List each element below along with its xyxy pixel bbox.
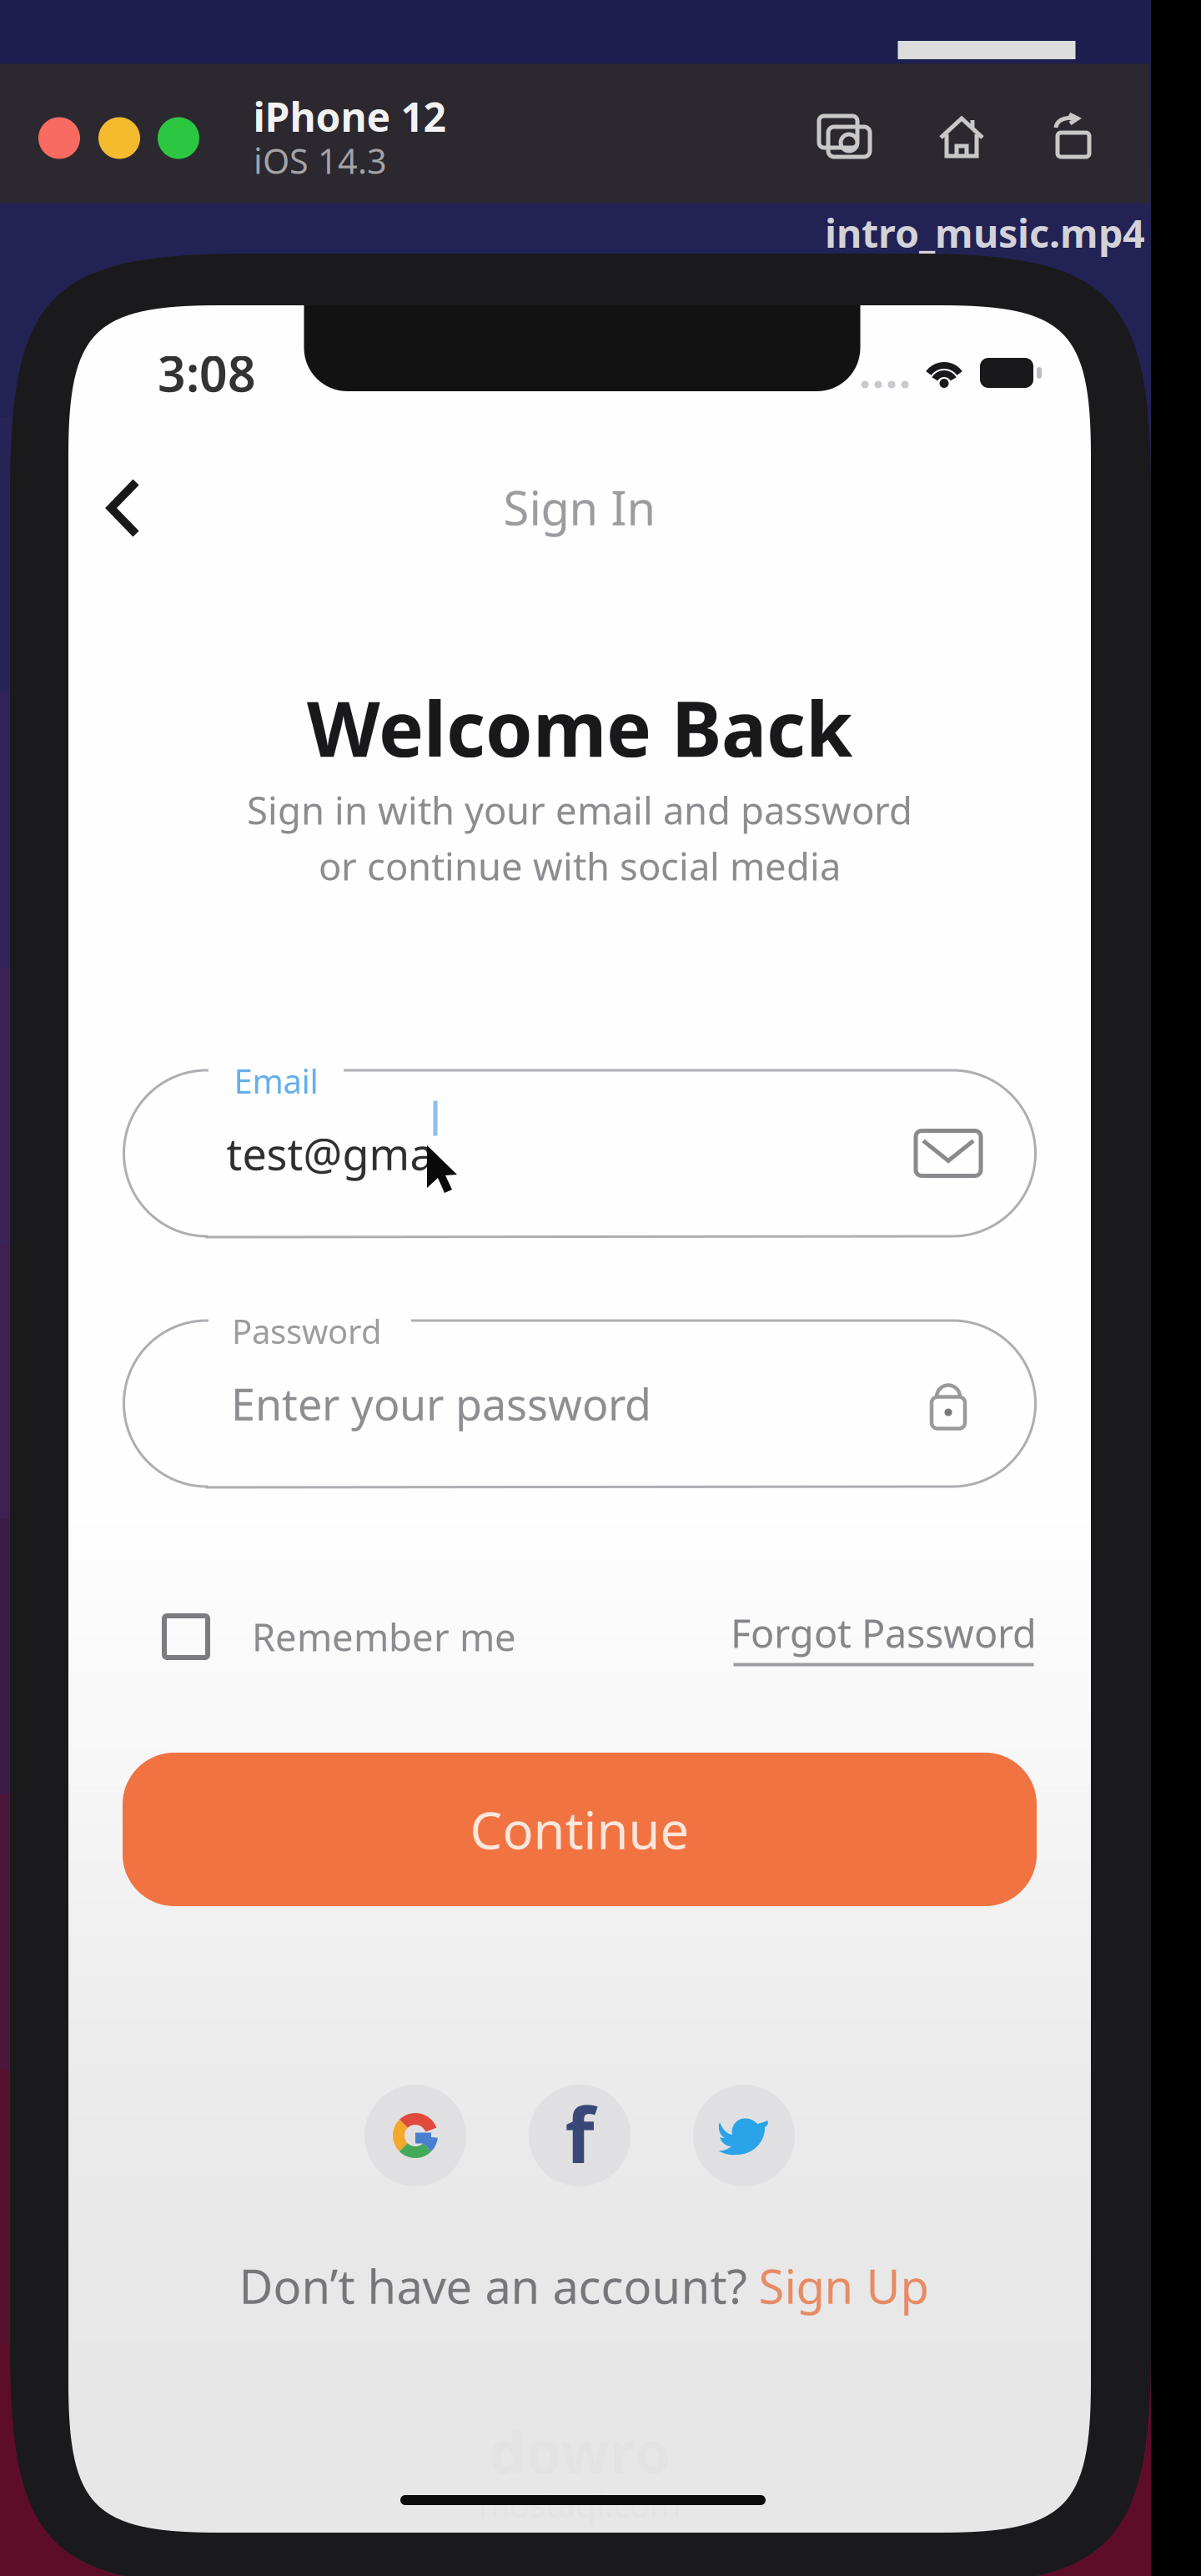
button[interactable]: Continue	[123, 1753, 1037, 1906]
staticText: intro_music.mp4	[825, 207, 1145, 259]
staticText: Continue	[470, 1795, 689, 1863]
staticText: Password	[232, 1309, 382, 1353]
button[interactable]: Back	[78, 463, 168, 553]
staticText: iPhone 12	[253, 90, 446, 143]
staticText: f	[565, 2084, 594, 2184]
staticText: Sign in with your email and password	[247, 785, 912, 835]
button[interactable]: Sign in with Facebook	[529, 2085, 631, 2186]
staticText: Don’t have an account?	[239, 2255, 747, 2317]
staticText: Forgot Password	[731, 1607, 1037, 1659]
button[interactable]: Home	[938, 113, 985, 160]
staticText: Email	[234, 1059, 318, 1103]
button[interactable]: Screenshot	[817, 113, 873, 160]
button[interactable]: Sign in with Twitter	[693, 2085, 795, 2186]
staticText: Enter your password	[231, 1375, 651, 1432]
staticText: mostaql.com	[479, 2482, 681, 2526]
button[interactable]: Forgot Password	[722, 1589, 1037, 1685]
staticText: Welcome Back	[307, 677, 852, 778]
button[interactable]: Sign in with Google	[364, 2085, 466, 2186]
button[interactable]: Sign Up	[747, 2255, 929, 2317]
staticText: iOS 14.3	[254, 138, 387, 184]
staticText: Sign In	[503, 476, 656, 538]
staticText: or continue with social media	[319, 841, 841, 891]
button[interactable]: Remember me	[123, 1588, 516, 1685]
button[interactable]: Rotate	[1048, 113, 1095, 160]
staticText: 3:08	[158, 340, 256, 405]
staticText: Remember me	[252, 1612, 516, 1662]
staticText: Sign Up	[759, 2255, 929, 2317]
staticText: test@gma	[226, 1124, 434, 1182]
